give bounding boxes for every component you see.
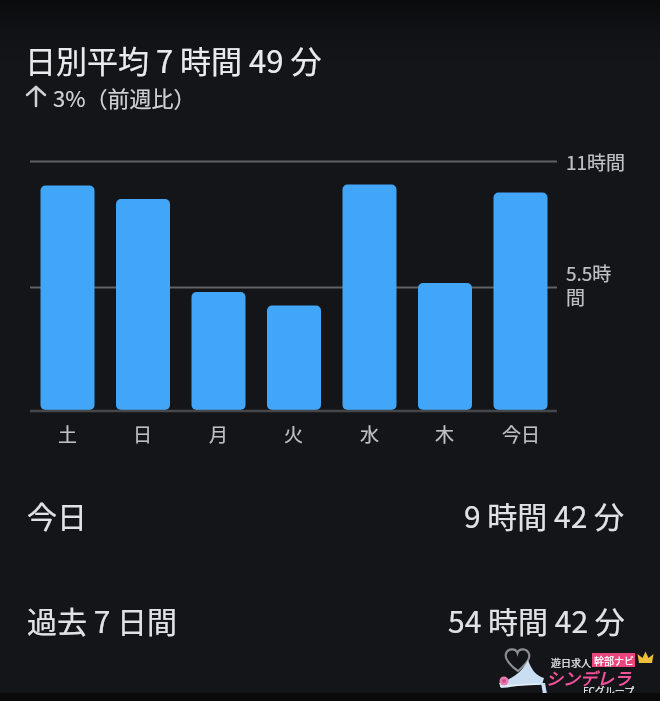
staticText: 土 — [58, 420, 78, 448]
staticText: 今日 — [502, 420, 541, 448]
staticText: 遊日求人 — [551, 655, 591, 669]
staticText: FCグループ — [583, 683, 635, 697]
staticText: 54 時間 42 分 — [448, 598, 625, 641]
staticText: 水 — [360, 420, 380, 448]
button[interactable]: 過去 7 日間 — [0, 595, 660, 643]
staticText: 幹部ナビ — [594, 653, 634, 667]
staticText: 今日 — [27, 493, 87, 536]
button[interactable]: 今日 — [0, 490, 660, 538]
staticText: 木 — [435, 420, 455, 448]
staticText: 日 — [133, 420, 153, 448]
staticText: 3%（前週比） — [53, 81, 196, 113]
staticText: 火 — [284, 420, 304, 448]
staticText: 5.5時間 — [566, 259, 628, 311]
staticText: 9 時間 42 分 — [464, 493, 625, 536]
staticText: 日別平均 7 時間 49 分 — [25, 37, 322, 82]
staticText: 過去 7 日間 — [27, 598, 178, 641]
staticText: 11時間 — [566, 148, 626, 176]
staticText: シンデレラ — [546, 665, 631, 690]
staticText: 月 — [209, 420, 229, 448]
